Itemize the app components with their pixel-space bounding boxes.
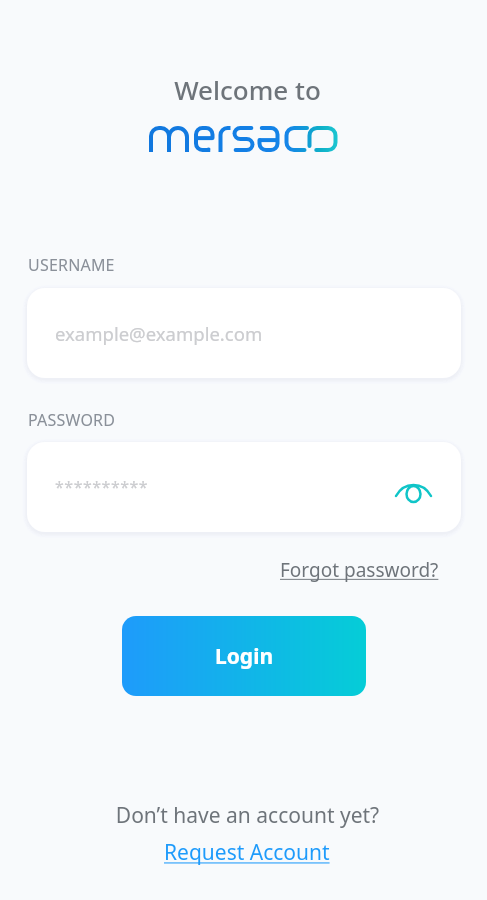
- button[interactable]: example@example.com: [27, 288, 461, 378]
- staticText: PASSWORD: [28, 409, 116, 431]
- staticText: Welcome to: [4, 72, 487, 107]
- button[interactable]: Request Account: [164, 838, 330, 867]
- staticText: Login: [215, 642, 274, 671]
- button[interactable]: Login: [122, 616, 366, 696]
- button[interactable]: Show password: [376, 464, 448, 512]
- staticText: example@example.com: [55, 321, 263, 346]
- staticText: Request Account: [164, 838, 330, 867]
- button[interactable]: **********: [27, 442, 461, 532]
- staticText: **********: [55, 476, 149, 498]
- staticText: Don’t have an account yet?: [4, 801, 487, 830]
- staticText: USERNAME: [28, 254, 115, 276]
- button[interactable]: Forgot password?: [280, 557, 439, 583]
- staticText: Forgot password?: [280, 557, 439, 583]
